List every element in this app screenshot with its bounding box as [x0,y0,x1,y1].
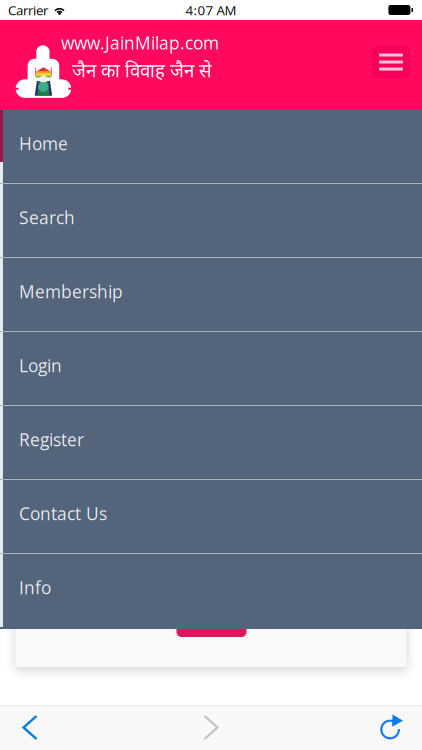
button[interactable]: Register [0,406,422,479]
staticText: Home [19,132,68,155]
staticText: Membership [19,280,123,303]
button[interactable]: Back [8,705,52,749]
button[interactable]: Menu [367,38,415,86]
button[interactable]: Home [0,110,422,183]
button[interactable]: Info [0,554,422,627]
staticText: Contact Us [19,502,107,525]
button[interactable]: Contact Us [0,480,422,553]
button[interactable]: Forward [189,705,233,749]
staticText: Info [19,576,51,599]
staticText: 4:07 AM [185,1,236,19]
staticText: Carrier [8,1,48,19]
staticText: www.JainMilap.com [61,31,219,55]
button[interactable]: Reload [370,705,414,749]
staticText: Login [19,354,62,377]
button[interactable]: Login [0,332,422,405]
staticText: Search [19,206,75,229]
button[interactable]: Search [0,184,422,257]
button[interactable]: Membership [0,258,422,331]
staticText: जैन का विवाह जैन से [72,61,212,85]
staticText: Register [19,428,84,451]
